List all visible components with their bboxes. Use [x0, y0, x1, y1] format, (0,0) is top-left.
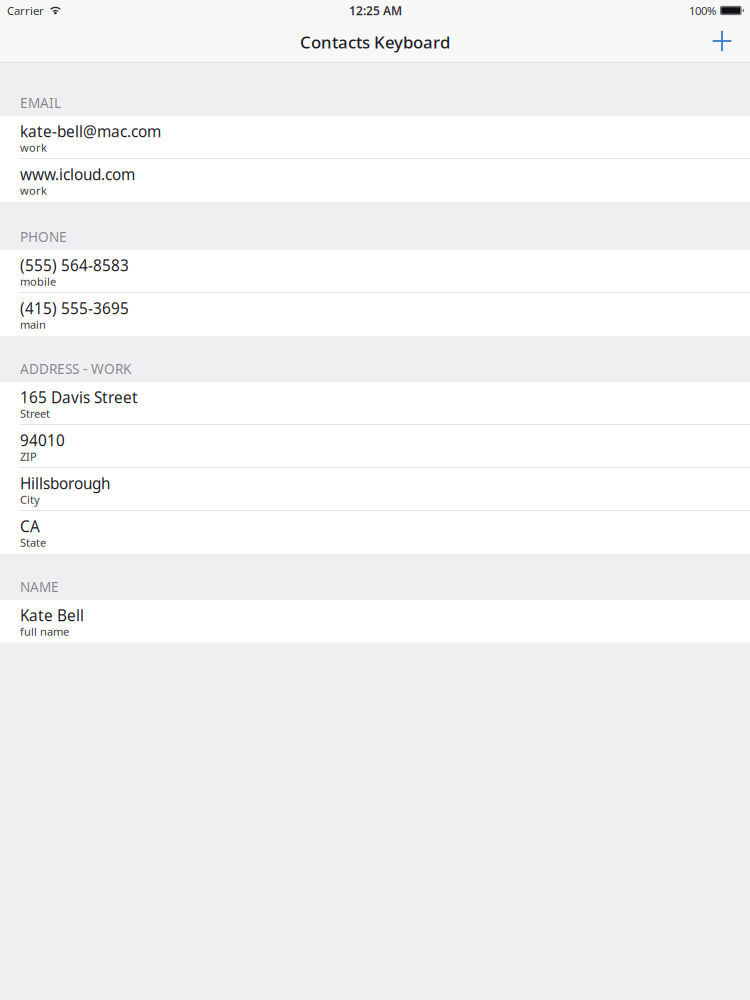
staticText: 165 Davis Street: [20, 387, 138, 408]
staticText: City: [20, 492, 40, 507]
staticText: full name: [20, 624, 69, 639]
staticText: mobile: [20, 274, 56, 289]
staticText: State: [20, 535, 46, 550]
staticText: work: [20, 183, 47, 198]
staticText: 94010: [20, 430, 65, 451]
button[interactable]: kate-bell@mac.com: [0, 116, 750, 159]
button[interactable]: 94010: [0, 425, 750, 468]
staticText: PHONE: [20, 227, 67, 246]
button[interactable]: 165 Davis Street: [0, 382, 750, 425]
staticText: 100%: [689, 3, 716, 18]
staticText: (415) 555-3695: [20, 298, 129, 319]
button[interactable]: CA: [0, 511, 750, 554]
button[interactable]: Hillsborough: [0, 468, 750, 511]
staticText: Kate Bell: [20, 605, 84, 626]
staticText: www.icloud.com: [20, 164, 135, 185]
staticText: EMAIL: [20, 93, 61, 112]
staticText: 12:25 AM: [349, 2, 402, 19]
staticText: kate-bell@mac.com: [20, 121, 161, 142]
button[interactable]: (415) 555-3695: [0, 293, 750, 336]
staticText: Hillsborough: [20, 473, 110, 494]
staticText: main: [20, 317, 46, 332]
button[interactable]: Add field: [702, 22, 742, 62]
button[interactable]: www.icloud.com: [0, 159, 750, 202]
staticText: ZIP: [20, 449, 37, 464]
staticText: (555) 564-8583: [20, 255, 129, 276]
staticText: Carrier: [7, 3, 44, 18]
staticText: work: [20, 140, 47, 155]
staticText: Contacts Keyboard: [300, 31, 450, 53]
button[interactable]: (555) 564-8583: [0, 250, 750, 293]
staticText: NAME: [20, 577, 59, 596]
staticText: Street: [20, 406, 50, 421]
staticText: ADDRESS - WORK: [20, 359, 131, 378]
staticText: CA: [20, 516, 40, 537]
button[interactable]: Kate Bell: [0, 600, 750, 643]
